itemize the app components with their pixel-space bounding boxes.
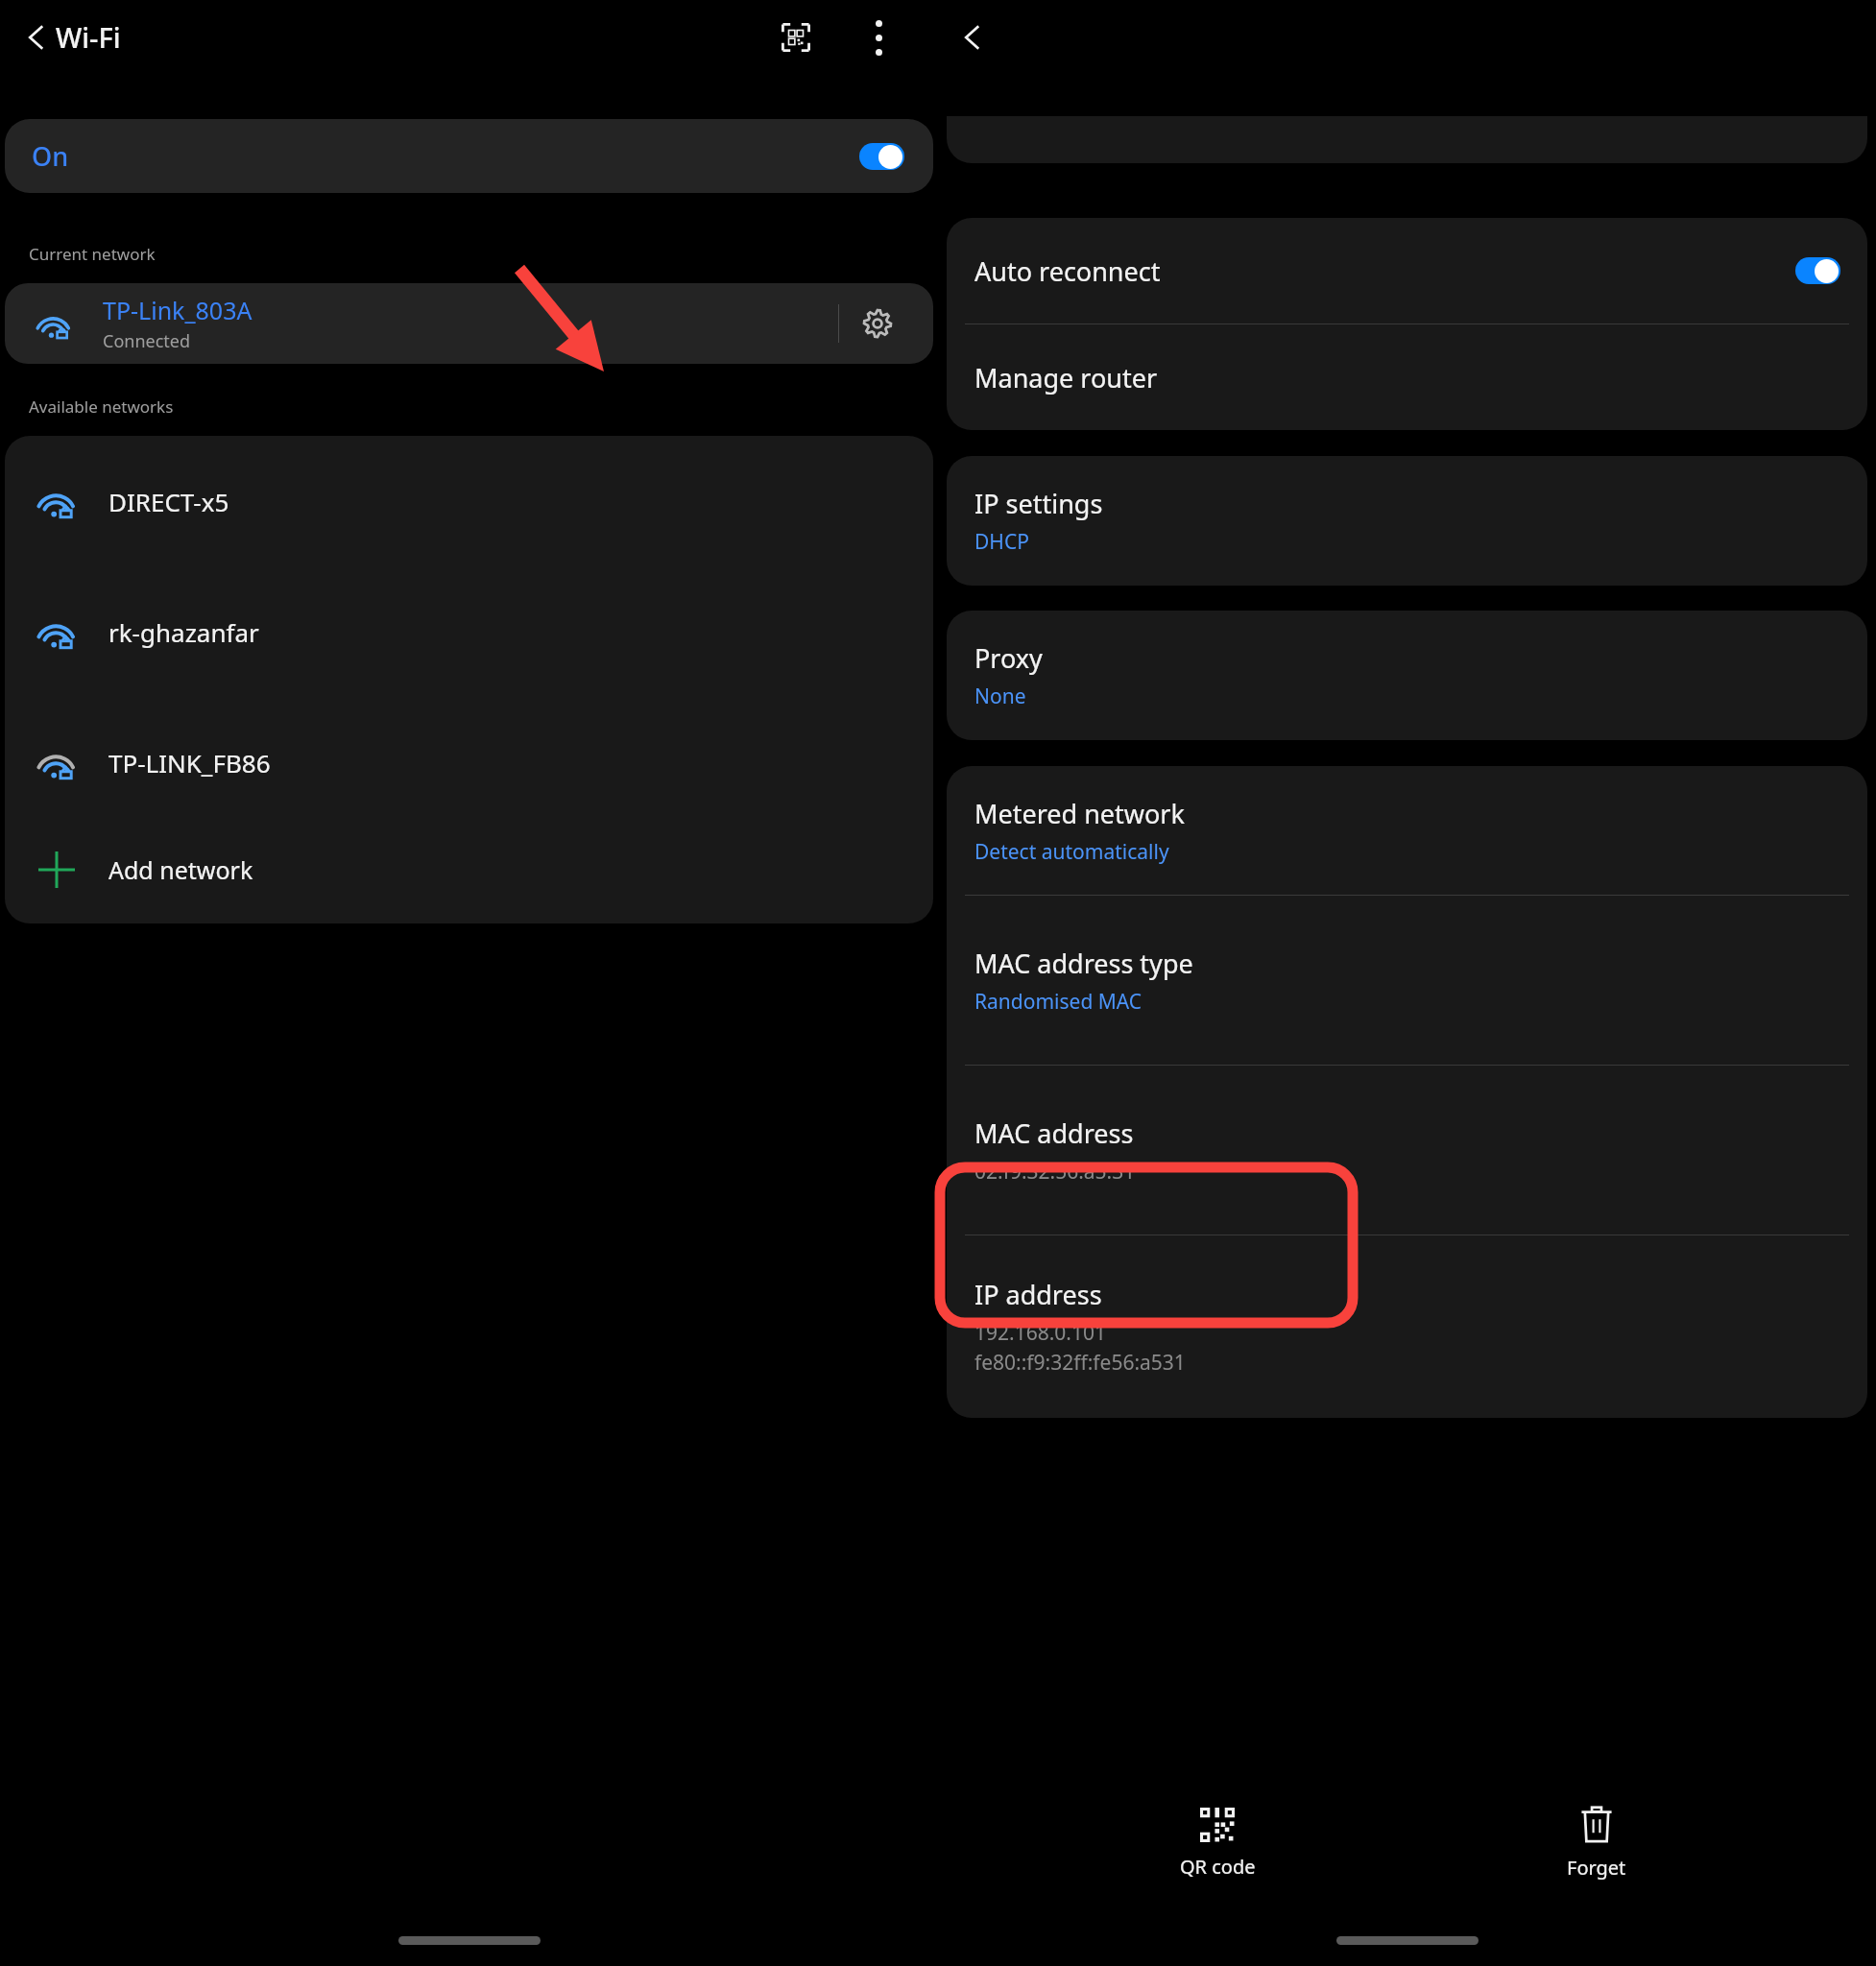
- button[interactable]: Network settings: [851, 297, 904, 350]
- staticText: QR code: [1180, 1854, 1256, 1880]
- button[interactable]: Manage router: [947, 324, 1867, 430]
- button[interactable]: Toggle on: [1795, 257, 1840, 284]
- staticText: 192.168.0.101: [974, 1319, 1107, 1347]
- button[interactable]: Add network: [5, 827, 933, 912]
- staticText: MAC address: [974, 1115, 1134, 1151]
- staticText: Metered network: [974, 796, 1185, 831]
- staticText: On: [32, 138, 69, 174]
- button[interactable]: Forget: [1496, 1801, 1697, 1886]
- staticText: Connected: [103, 329, 191, 353]
- staticText: Proxy: [974, 640, 1043, 676]
- button[interactable]: IP address: [947, 1235, 1867, 1418]
- button[interactable]: Back: [12, 12, 61, 62]
- staticText: 02:f9:32:56:a5:31: [974, 1158, 1136, 1186]
- button[interactable]: rk-ghazanfar: [5, 566, 933, 697]
- staticText: TP-Link_803A: [103, 294, 253, 326]
- staticText: Manage router: [974, 360, 1158, 396]
- staticText: IP settings: [974, 486, 1103, 521]
- button[interactable]: Proxy: [947, 611, 1867, 740]
- staticText: Forget: [1567, 1855, 1626, 1881]
- staticText: Current network: [29, 243, 156, 265]
- button[interactable]: More options: [854, 12, 903, 62]
- staticText: MAC address type: [974, 946, 1193, 981]
- button[interactable]: MAC address type: [947, 896, 1867, 1065]
- staticText: TP-LINK_FB86: [108, 746, 271, 779]
- button[interactable]: TP-LINK_FB86: [5, 697, 933, 827]
- staticText: fe80::f9:32ff:fe56:a531: [974, 1349, 1186, 1377]
- button[interactable]: DIRECT-x5: [5, 436, 933, 566]
- staticText: rk-ghazanfar: [108, 615, 259, 649]
- staticText: Detect automatically: [974, 838, 1169, 866]
- button[interactable]: Metered network: [947, 766, 1867, 895]
- button[interactable]: IP settings: [947, 456, 1867, 586]
- staticText: Auto reconnect: [974, 253, 1161, 289]
- button[interactable]: [947, 116, 1867, 163]
- staticText: Add network: [108, 853, 253, 886]
- button[interactable]: Toggle on: [859, 143, 904, 170]
- staticText: DIRECT-x5: [108, 485, 229, 518]
- staticText: DHCP: [974, 528, 1029, 556]
- button[interactable]: TP-Link_803A: [5, 283, 673, 364]
- button[interactable]: On: [5, 119, 933, 193]
- button[interactable]: Back: [948, 12, 998, 62]
- staticText: IP address: [974, 1277, 1102, 1312]
- staticText: None: [974, 683, 1026, 710]
- staticText: Wi-Fi: [56, 18, 121, 56]
- button[interactable]: QR code: [1117, 1802, 1318, 1885]
- staticText: Randomised MAC: [974, 988, 1142, 1016]
- button[interactable]: Auto reconnect: [947, 218, 1867, 324]
- staticText: Available networks: [29, 396, 174, 418]
- button[interactable]: MAC address: [947, 1066, 1867, 1235]
- button[interactable]: Scan QR code: [771, 12, 821, 62]
